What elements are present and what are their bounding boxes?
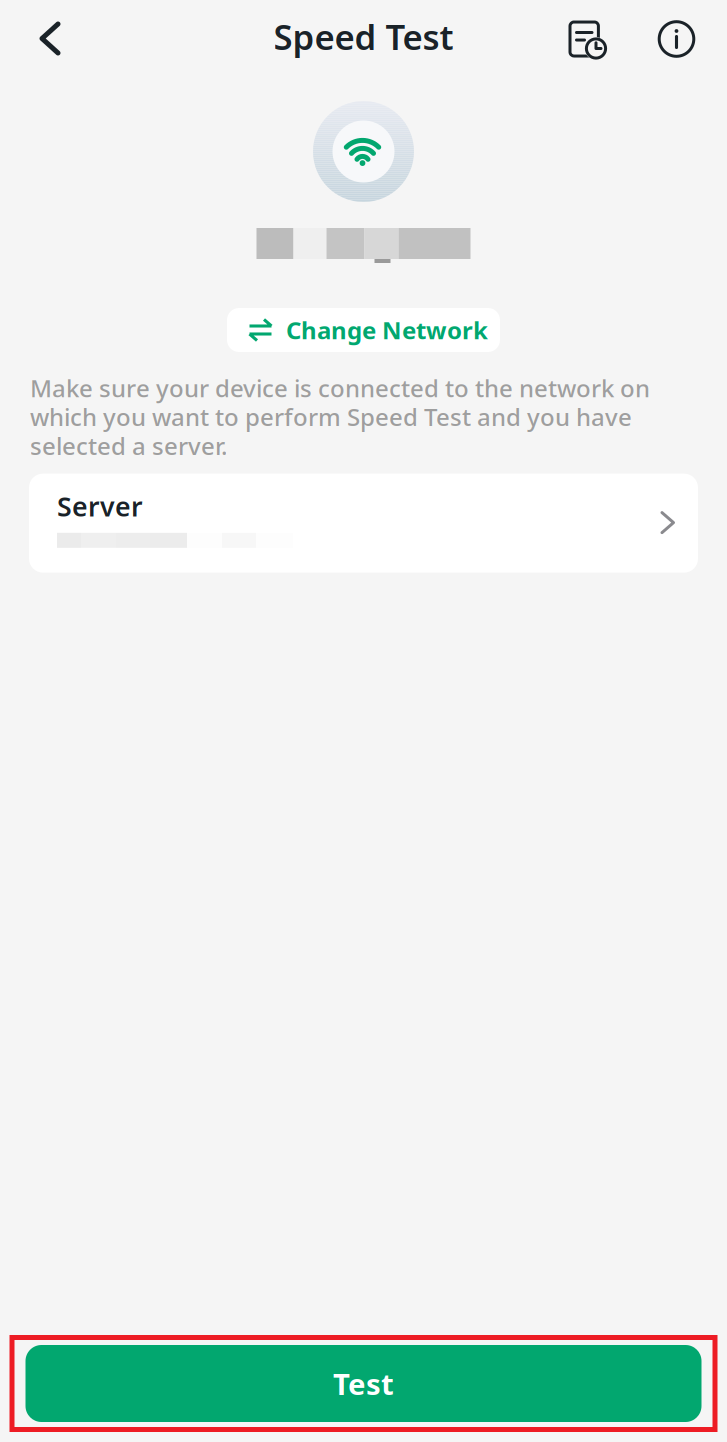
- button[interactable]: Test history: [553, 1, 642, 77]
- button[interactable]: Change Network: [227, 308, 500, 352]
- staticText: Speed Test: [273, 13, 453, 59]
- staticText: Server: [57, 488, 143, 524]
- button[interactable]: Back: [0, 1, 89, 77]
- staticText: Test: [333, 1364, 394, 1403]
- staticText: Make sure your device is connected to th…: [30, 372, 650, 404]
- staticText: Change Network: [286, 314, 488, 346]
- staticText: which you want to perform Speed Test and…: [30, 401, 632, 433]
- button[interactable]: Information: [642, 1, 727, 77]
- button[interactable]: Server: [29, 474, 698, 573]
- button[interactable]: Test: [25, 1345, 701, 1422]
- staticText: selected a server.: [30, 430, 228, 462]
